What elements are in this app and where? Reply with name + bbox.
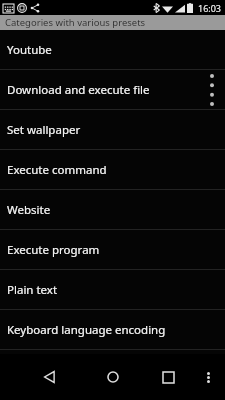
button[interactable]: Youtube — [0, 30, 225, 69]
button[interactable]: Download and execute file — [0, 70, 225, 109]
button[interactable]: Website — [0, 190, 225, 229]
button[interactable]: Home — [98, 362, 128, 392]
staticText: Keyboard language encoding — [7, 322, 166, 338]
button[interactable]: Set wallpaper — [0, 110, 225, 149]
staticText: Set wallpaper — [7, 122, 81, 138]
button[interactable]: Keyboard language encoding — [0, 310, 225, 349]
button[interactable]: Back — [34, 362, 64, 392]
button[interactable]: Recent apps — [153, 362, 183, 392]
staticText: Execute program — [7, 242, 100, 258]
button[interactable]: More options — [199, 362, 217, 392]
button[interactable]: Plain text — [0, 270, 225, 309]
button[interactable]: More options — [205, 72, 219, 108]
staticText: Plain text — [7, 282, 58, 298]
staticText: Execute command — [7, 162, 107, 178]
staticText: Youtube — [7, 42, 52, 58]
button[interactable]: Execute program — [0, 230, 225, 269]
button[interactable]: Execute command — [0, 150, 225, 189]
staticText: Website — [7, 202, 51, 218]
staticText: Categories with various presets — [5, 16, 146, 29]
staticText: Download and execute file — [7, 82, 150, 98]
staticText: 16:03 — [198, 2, 222, 14]
